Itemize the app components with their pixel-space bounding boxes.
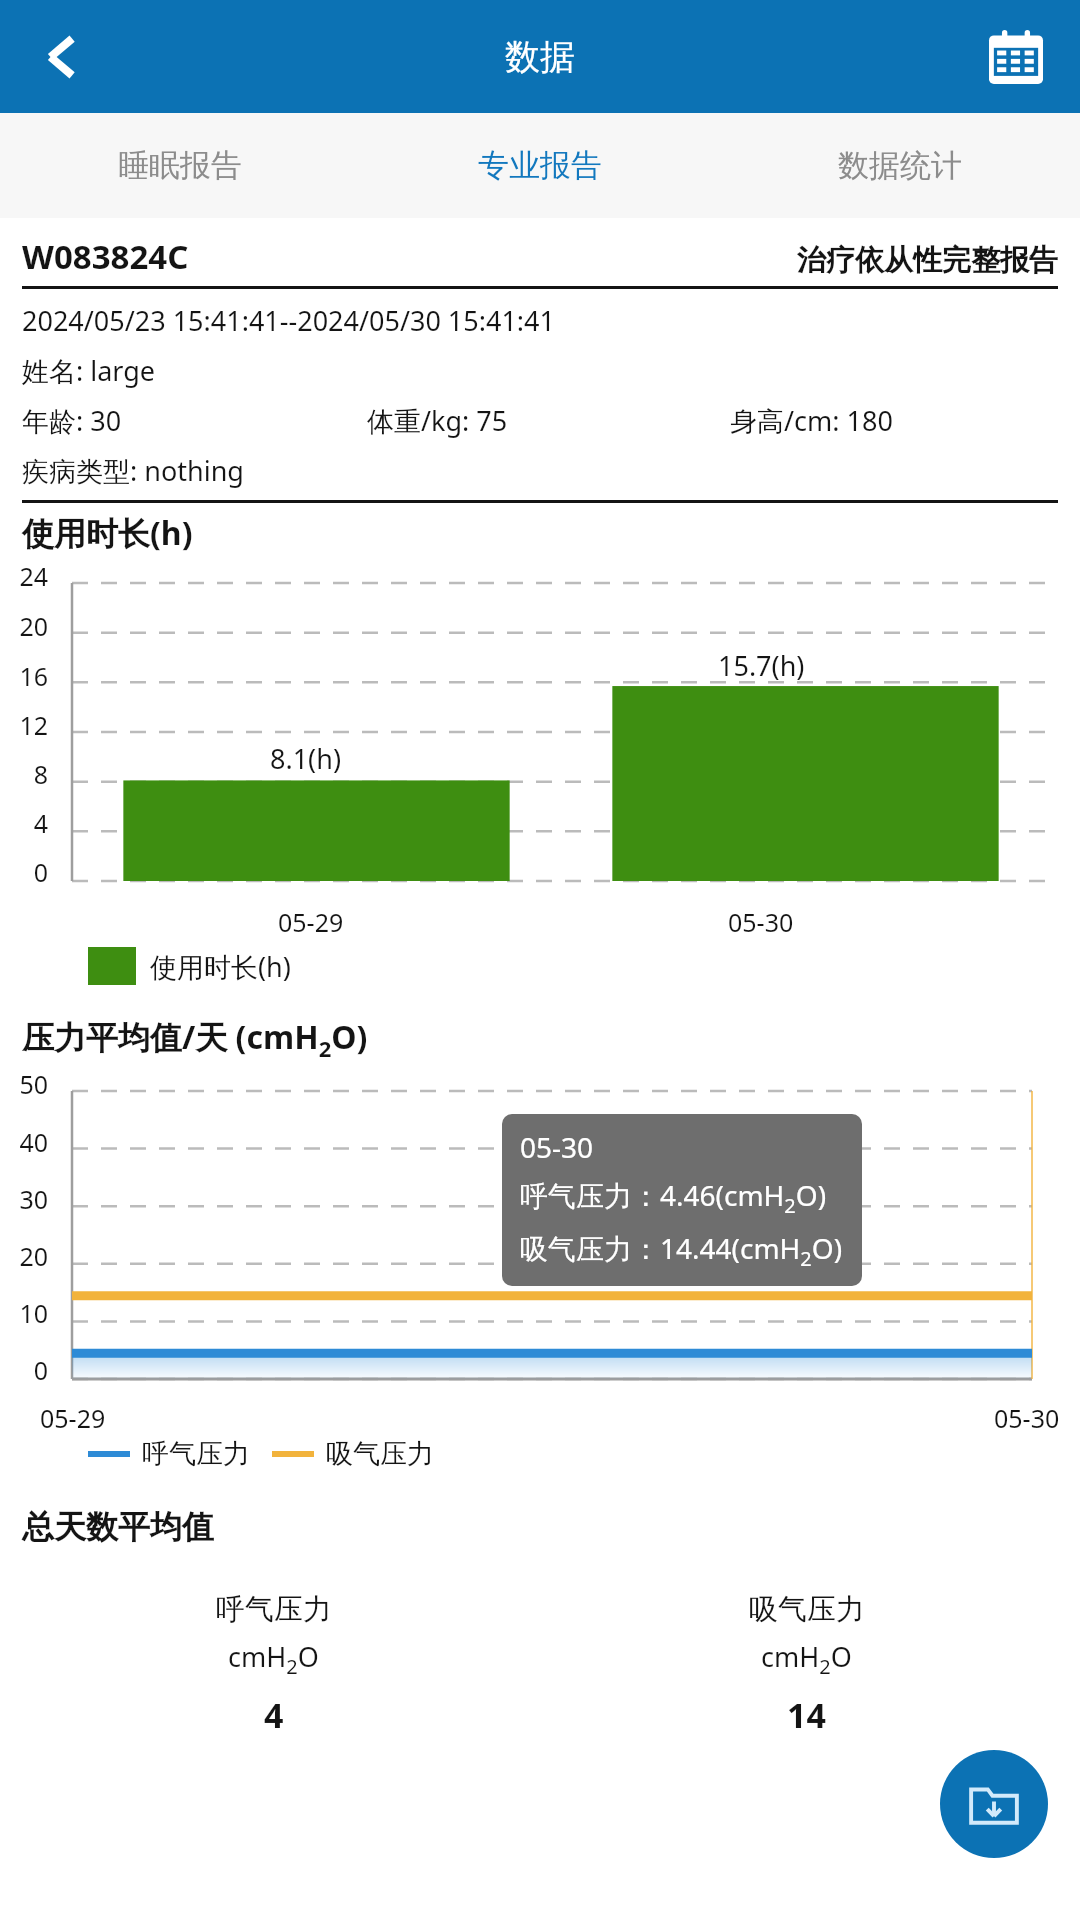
staticText: 50 <box>0 1067 48 1101</box>
staticText: cmH2O <box>228 1638 319 1680</box>
staticText: 体重/kg: 75 <box>367 402 730 439</box>
button[interactable]: 呼气压力 <box>18 1569 529 1760</box>
staticText: 身高/cm: 180 <box>730 402 1058 439</box>
staticText: 16 <box>0 659 48 693</box>
button[interactable]: Back <box>20 15 104 99</box>
button[interactable]: 睡眠报告 <box>0 113 360 218</box>
staticText: 05-30 <box>520 1128 594 1166</box>
staticText: 24 <box>0 559 48 593</box>
staticText: 20 <box>0 609 48 643</box>
staticText: 40 <box>0 1125 48 1159</box>
staticText: 05-29 <box>40 1401 106 1435</box>
staticText: 使用时长(h) <box>150 948 291 985</box>
button[interactable]: 吸气压力 <box>551 1569 1062 1760</box>
staticText: 专业报告 <box>478 146 602 185</box>
staticText: 治疗依从性完整报告 <box>797 242 1058 279</box>
button[interactable]: 数据统计 <box>720 113 1080 218</box>
staticText: 数据统计 <box>838 146 962 185</box>
staticText: 20 <box>0 1239 48 1273</box>
staticText: 14 <box>787 1692 826 1738</box>
staticText: 4 <box>0 806 48 840</box>
staticText: 姓名: large <box>22 352 156 389</box>
staticText: 睡眠报告 <box>118 146 242 185</box>
staticText: 12 <box>0 708 48 742</box>
staticText: 0 <box>0 855 48 889</box>
staticText: 压力平均值/天 (cmH2O) <box>22 1015 368 1063</box>
staticText: 吸气压力 <box>749 1591 865 1628</box>
staticText: 呼气压力 <box>216 1591 332 1628</box>
staticText: 15.7(h) <box>718 647 805 684</box>
staticText: 数据 <box>505 35 575 79</box>
staticText: W083824C <box>22 234 189 279</box>
staticText: 使用时长(h) <box>22 511 193 555</box>
staticText: 呼气压力：4.46(cmH2O) <box>520 1176 827 1219</box>
button[interactable]: Calendar <box>974 15 1058 99</box>
staticText: 10 <box>0 1296 48 1330</box>
button[interactable]: Export report <box>940 1750 1048 1858</box>
staticText: 4 <box>264 1692 284 1738</box>
staticText: cmH2O <box>761 1638 852 1680</box>
staticText: 疾病类型: nothing <box>22 452 244 489</box>
staticText: 呼气压力 <box>142 1437 250 1471</box>
button[interactable]: 专业报告 <box>360 113 720 218</box>
staticText: 0 <box>0 1353 48 1387</box>
staticText: 05-29 <box>278 905 344 939</box>
staticText: 8 <box>0 757 48 791</box>
staticText: 05-30 <box>994 1401 1060 1435</box>
staticText: 2024/05/23 15:41:41--2024/05/30 15:41:41 <box>22 302 555 339</box>
staticText: 吸气压力 <box>326 1437 434 1471</box>
staticText: 吸气压力：14.44(cmH2O) <box>520 1229 843 1272</box>
staticText: 8.1(h) <box>270 740 342 777</box>
staticText: 05-30 <box>728 905 794 939</box>
staticText: 年龄: 30 <box>22 402 367 439</box>
staticText: 30 <box>0 1182 48 1216</box>
staticText: 总天数平均值 <box>22 1507 214 1547</box>
